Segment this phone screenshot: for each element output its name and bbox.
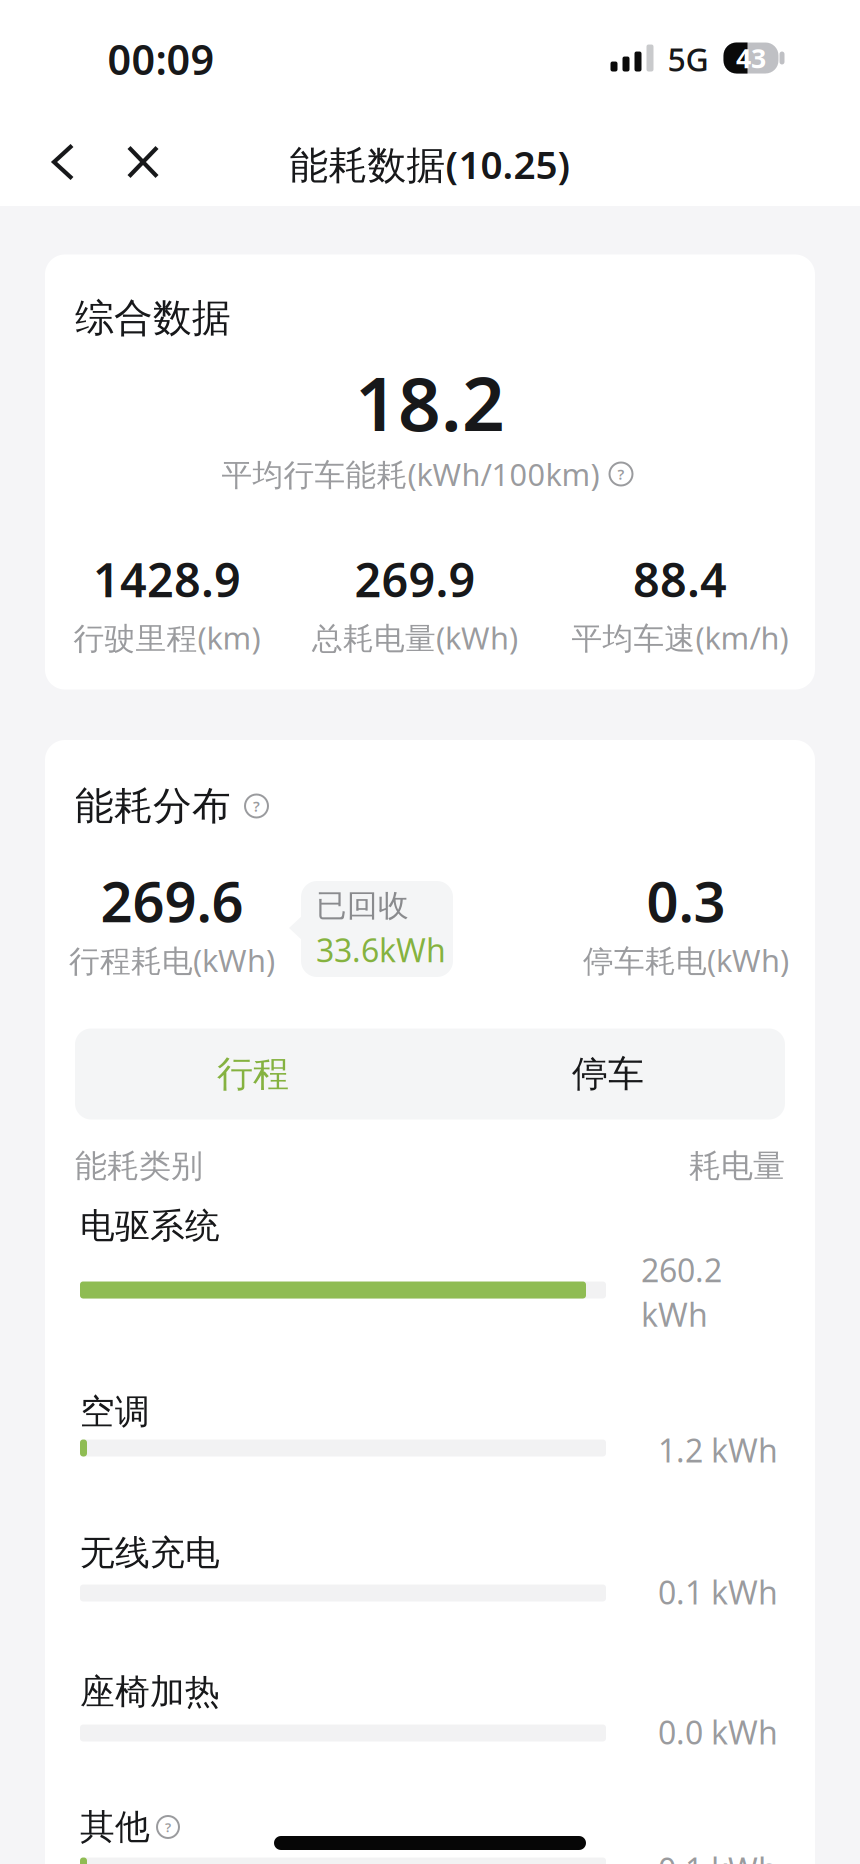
button[interactable]: 平均行车能耗说明 [609,462,632,485]
button[interactable]: 行程 [75,1028,430,1119]
staticText: 能耗数据(10.25) [289,138,570,190]
staticText: ? [617,464,624,484]
staticText: 1.2 kWh [658,1429,778,1471]
staticText: 43 [736,40,766,76]
staticText: 行程 [217,1052,289,1096]
staticText: 0.3 [646,863,725,938]
staticText: 其他 [80,1806,150,1848]
staticText: 260.2 [641,1248,722,1291]
staticText: ? [253,796,260,816]
staticText: 耗电量 [689,1146,785,1186]
staticText: 无线充电 [80,1532,220,1574]
staticText: 18.2 [355,352,505,452]
staticText: 停车耗电(kWh) [583,940,789,980]
staticText: 能耗分布 [75,782,231,830]
staticText: 行程耗电(kWh) [69,940,275,980]
staticText: 1428.9 [93,548,241,610]
staticText: 0.0 kWh [658,1711,778,1753]
staticText: 总耗电量(kWh) [312,617,518,658]
staticText: 0.1 kWh [658,1571,778,1613]
staticText: 行驶里程(km) [73,617,260,658]
staticText: 平均行车能耗(kWh/100km) [221,454,599,494]
staticText: 00:09 [107,32,214,86]
button[interactable]: 其他说明 [157,1816,179,1838]
staticText: 座椅加热 [80,1671,220,1713]
button[interactable]: 能耗分布说明 [245,794,268,817]
staticText: 停车 [572,1052,644,1096]
staticText: 5G [667,38,708,80]
staticText: 0.1 kWh [658,1848,778,1864]
staticText: 平均车速(km/h) [571,617,788,658]
staticText: ? [165,1818,171,1836]
staticText: 269.6 [100,863,243,938]
staticText: 已回收 [316,887,409,925]
button[interactable]: 停车 [430,1028,785,1119]
staticText: 88.4 [633,548,727,610]
button[interactable]: Back [42,133,84,190]
staticText: kWh [641,1293,708,1335]
staticText: 33.6kWh [316,929,446,971]
staticText: 空调 [80,1391,150,1433]
staticText: 电驱系统 [80,1205,220,1247]
staticText: 269.9 [354,548,475,610]
button[interactable]: Close [117,135,169,188]
staticText: 综合数据 [75,294,231,342]
staticText: 能耗类别 [75,1146,203,1186]
